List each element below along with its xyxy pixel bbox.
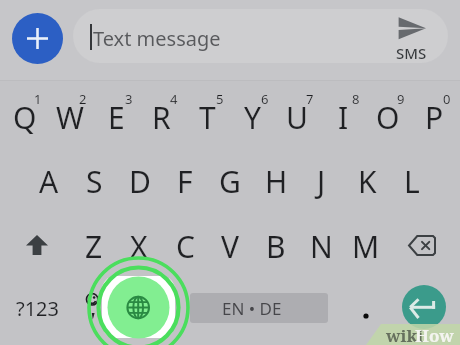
- staticText: Z: [85, 226, 103, 267]
- button[interactable]: W: [47, 89, 93, 145]
- staticText: 4: [170, 90, 178, 106]
- staticText: T: [199, 97, 216, 138]
- staticText: M: [352, 226, 380, 267]
- button[interactable]: B: [253, 218, 299, 274]
- staticText: L: [404, 161, 420, 202]
- staticText: 5: [216, 90, 224, 106]
- button[interactable]: Emoji and symbols: [73, 285, 113, 327]
- staticText: S: [86, 161, 103, 202]
- staticText: F: [177, 161, 193, 202]
- staticText: I: [338, 97, 349, 138]
- button[interactable]: H: [253, 153, 299, 209]
- button[interactable]: Send SMS: [392, 12, 434, 60]
- staticText: N: [310, 226, 333, 267]
- staticText: J: [317, 161, 326, 202]
- button[interactable]: U: [274, 89, 320, 145]
- button[interactable]: T: [184, 89, 230, 145]
- button[interactable]: ?123: [12, 285, 62, 331]
- button[interactable]: F: [162, 153, 208, 209]
- staticText: EN • DE: [222, 297, 282, 320]
- staticText: X: [130, 226, 148, 267]
- button[interactable]: J: [298, 153, 344, 209]
- staticText: 1: [34, 90, 42, 106]
- button[interactable]: Shift: [14, 222, 60, 268]
- staticText: A: [39, 161, 59, 202]
- button[interactable]: Text message: [73, 9, 448, 63]
- button[interactable]: N: [298, 218, 344, 274]
- staticText: 3: [125, 90, 133, 106]
- staticText: K: [358, 161, 377, 202]
- button[interactable]: Y: [229, 89, 275, 145]
- staticText: ?123: [16, 295, 59, 322]
- staticText: Text message: [93, 25, 221, 52]
- button[interactable]: M: [343, 218, 389, 274]
- staticText: H: [265, 161, 288, 202]
- button[interactable]: I: [320, 89, 366, 145]
- button[interactable]: EN • DE: [190, 293, 328, 323]
- staticText: C: [176, 226, 195, 267]
- button[interactable]: Period: [344, 293, 388, 337]
- button[interactable]: C: [162, 218, 208, 274]
- staticText: How: [415, 324, 454, 345]
- button[interactable]: A: [26, 153, 72, 209]
- button[interactable]: K: [344, 153, 390, 209]
- button[interactable]: Q: [2, 89, 48, 145]
- staticText: 0: [443, 90, 451, 106]
- staticText: E: [108, 97, 125, 138]
- button[interactable]: P: [411, 89, 457, 145]
- staticText: G: [219, 161, 241, 202]
- staticText: 9: [397, 90, 405, 106]
- button[interactable]: E: [93, 89, 139, 145]
- button[interactable]: V: [207, 218, 253, 274]
- staticText: D: [129, 161, 151, 202]
- staticText: Q: [13, 97, 37, 138]
- staticText: 8: [352, 90, 360, 106]
- button[interactable]: X: [116, 218, 162, 274]
- staticText: O: [376, 97, 400, 138]
- button[interactable]: Backspace: [399, 222, 445, 268]
- staticText: SMS: [396, 43, 427, 63]
- button[interactable]: Enter: [402, 285, 446, 329]
- staticText: W: [56, 97, 84, 138]
- button[interactable]: D: [117, 153, 163, 209]
- button[interactable]: Z: [71, 218, 117, 274]
- staticText: Y: [244, 97, 261, 138]
- button[interactable]: G: [207, 153, 253, 209]
- staticText: 6: [261, 90, 269, 106]
- button[interactable]: S: [71, 153, 117, 209]
- staticText: B: [266, 226, 286, 267]
- staticText: U: [286, 97, 308, 138]
- staticText: 7: [306, 90, 314, 106]
- button[interactable]: L: [389, 153, 435, 209]
- staticText: wiki: [386, 324, 424, 345]
- button[interactable]: Add attachment: [12, 13, 63, 64]
- staticText: R: [152, 97, 171, 138]
- staticText: 2: [79, 90, 87, 106]
- staticText: V: [221, 226, 239, 267]
- button[interactable]: O: [365, 89, 411, 145]
- button[interactable]: R: [138, 89, 184, 145]
- staticText: P: [425, 97, 444, 138]
